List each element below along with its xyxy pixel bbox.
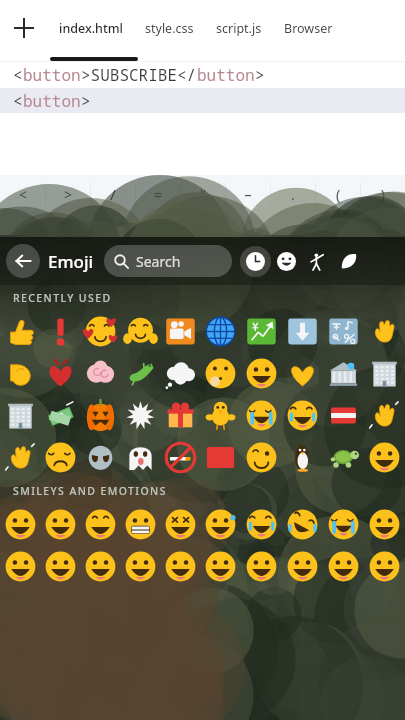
staticText: button bbox=[23, 64, 81, 86]
button[interactable]: Emoji bbox=[282, 545, 323, 587]
button[interactable]: Emoji bbox=[120, 394, 160, 436]
staticText: ( bbox=[333, 184, 343, 204]
button[interactable]: Recent bbox=[240, 246, 271, 277]
button[interactable]: " bbox=[180, 175, 225, 213]
button[interactable]: Emoji bbox=[40, 436, 80, 478]
button[interactable]: Emoji bbox=[364, 394, 405, 436]
button[interactable]: Emoji bbox=[160, 352, 200, 394]
button[interactable]: Emoji bbox=[40, 503, 80, 545]
button[interactable]: New file bbox=[0, 4, 48, 52]
button[interactable]: Emoji bbox=[40, 352, 80, 394]
button[interactable]: Emoji bbox=[323, 352, 364, 394]
button[interactable]: script.js bbox=[205, 0, 273, 56]
button[interactable]: People bbox=[302, 246, 333, 277]
button[interactable]: Emoji bbox=[80, 394, 120, 436]
button[interactable]: Emoji bbox=[0, 352, 40, 394]
button[interactable]: Emoji bbox=[323, 436, 364, 478]
staticText: Browser bbox=[284, 20, 333, 37]
button[interactable]: Emoji bbox=[364, 436, 405, 478]
button[interactable]: = bbox=[135, 175, 180, 213]
button[interactable]: Emoji bbox=[0, 436, 40, 478]
button[interactable]: Emoji bbox=[241, 436, 282, 478]
button[interactable]: Animals and nature bbox=[333, 246, 364, 277]
button[interactable]: Emoji bbox=[200, 545, 241, 587]
staticText: > bbox=[81, 90, 91, 112]
button[interactable]: Emoji bbox=[241, 352, 282, 394]
button[interactable]: Emoji bbox=[40, 545, 80, 587]
button[interactable]: Emoji bbox=[323, 394, 364, 436]
button[interactable]: Search bbox=[104, 245, 232, 277]
button[interactable]: Emoji bbox=[364, 310, 405, 352]
staticText: < bbox=[13, 90, 23, 112]
button[interactable]: Emoji bbox=[241, 310, 282, 352]
staticText: SMILEYS AND EMOTIONS bbox=[13, 484, 167, 498]
staticText: > bbox=[63, 184, 73, 204]
button[interactable]: Emoji bbox=[120, 352, 160, 394]
button[interactable]: Back bbox=[6, 244, 40, 278]
button[interactable]: Emoji bbox=[80, 503, 120, 545]
button[interactable]: Emoji bbox=[364, 503, 405, 545]
button[interactable]: – bbox=[225, 175, 270, 213]
button[interactable]: style.css bbox=[134, 0, 205, 56]
button[interactable]: Emoji bbox=[160, 545, 200, 587]
button[interactable]: Emoji bbox=[241, 503, 282, 545]
button[interactable]: ( bbox=[315, 175, 360, 213]
button[interactable]: Emoji bbox=[282, 503, 323, 545]
staticText: Emoji bbox=[48, 250, 94, 273]
button[interactable]: Emoji bbox=[282, 394, 323, 436]
button[interactable]: Emoji bbox=[200, 394, 241, 436]
button[interactable]: / bbox=[90, 175, 135, 213]
button[interactable]: Emoji bbox=[241, 545, 282, 587]
staticText: ) bbox=[378, 184, 388, 204]
button[interactable]: Emoji bbox=[200, 436, 241, 478]
button[interactable]: Browser bbox=[273, 0, 344, 56]
staticText: . bbox=[288, 184, 298, 204]
button[interactable]: Emoji bbox=[0, 310, 40, 352]
button[interactable]: Emoji bbox=[200, 503, 241, 545]
button[interactable]: index.html bbox=[48, 0, 134, 56]
button[interactable]: Emoji bbox=[80, 436, 120, 478]
staticText: – bbox=[243, 184, 253, 204]
staticText: " bbox=[198, 184, 208, 204]
button[interactable]: Emoji bbox=[323, 310, 364, 352]
button[interactable]: Emoji bbox=[160, 436, 200, 478]
button[interactable]: Emoji bbox=[0, 394, 40, 436]
button[interactable]: ) bbox=[360, 175, 405, 213]
button[interactable]: Emoji bbox=[364, 352, 405, 394]
button[interactable]: Emoji bbox=[120, 545, 160, 587]
button[interactable]: Emoji bbox=[120, 310, 160, 352]
button[interactable]: Emoji bbox=[323, 545, 364, 587]
button[interactable]: Emoji bbox=[323, 503, 364, 545]
staticText: > bbox=[255, 64, 265, 86]
button[interactable]: < bbox=[0, 175, 45, 213]
button[interactable]: Emoji bbox=[40, 394, 80, 436]
button[interactable]: Emoji bbox=[160, 503, 200, 545]
button[interactable]: Emoji bbox=[160, 310, 200, 352]
staticText: button bbox=[23, 90, 81, 112]
button[interactable]: Emoji bbox=[364, 545, 405, 587]
button[interactable]: Emoji bbox=[282, 310, 323, 352]
staticText: button bbox=[197, 64, 255, 86]
button[interactable]: Emoji bbox=[0, 503, 40, 545]
button[interactable]: Emoji bbox=[0, 545, 40, 587]
button[interactable]: . bbox=[270, 175, 315, 213]
button[interactable]: Emoji bbox=[80, 310, 120, 352]
button[interactable]: Emoji bbox=[282, 436, 323, 478]
staticText: script.js bbox=[216, 20, 262, 37]
staticText: Search bbox=[136, 252, 181, 271]
button[interactable]: Emoji bbox=[200, 352, 241, 394]
button[interactable]: Emoji bbox=[120, 436, 160, 478]
button[interactable]: Emoji bbox=[80, 545, 120, 587]
button[interactable]: Emoji bbox=[120, 503, 160, 545]
button[interactable]: > bbox=[45, 175, 90, 213]
button[interactable]: Emoji bbox=[80, 352, 120, 394]
staticText: / bbox=[108, 184, 118, 204]
button[interactable]: Emoji bbox=[200, 310, 241, 352]
staticText: = bbox=[153, 184, 163, 204]
button[interactable]: Emoji bbox=[282, 352, 323, 394]
button[interactable]: Emoji bbox=[160, 394, 200, 436]
staticText: RECENTLY USED bbox=[13, 291, 112, 305]
button[interactable]: Smileys bbox=[271, 246, 302, 277]
button[interactable]: Emoji bbox=[40, 310, 80, 352]
button[interactable]: Emoji bbox=[241, 394, 282, 436]
